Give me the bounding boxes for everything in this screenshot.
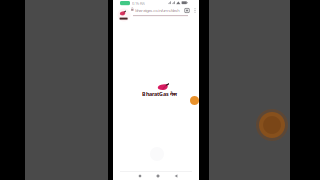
button[interactable]: BharatGas home <box>118 9 130 22</box>
button[interactable]: Chat support <box>190 96 199 105</box>
button[interactable]: Back <box>168 171 184 180</box>
staticText: bharatgas.co.in/ums/dash <box>135 8 179 13</box>
button[interactable]: More options <box>192 7 198 14</box>
button[interactable]: Home <box>150 171 166 180</box>
button[interactable]: Address bar <box>131 7 179 14</box>
button[interactable]: Tabs <box>183 7 190 14</box>
button[interactable]: Recent apps <box>132 171 148 180</box>
staticText: BharatGas गैस <box>142 90 177 97</box>
staticText: 0.16 K/s <box>132 1 145 6</box>
